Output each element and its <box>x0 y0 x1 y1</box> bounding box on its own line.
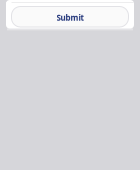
staticText: Submit <box>56 12 83 23</box>
button[interactable]: Submit <box>6 6 134 27</box>
